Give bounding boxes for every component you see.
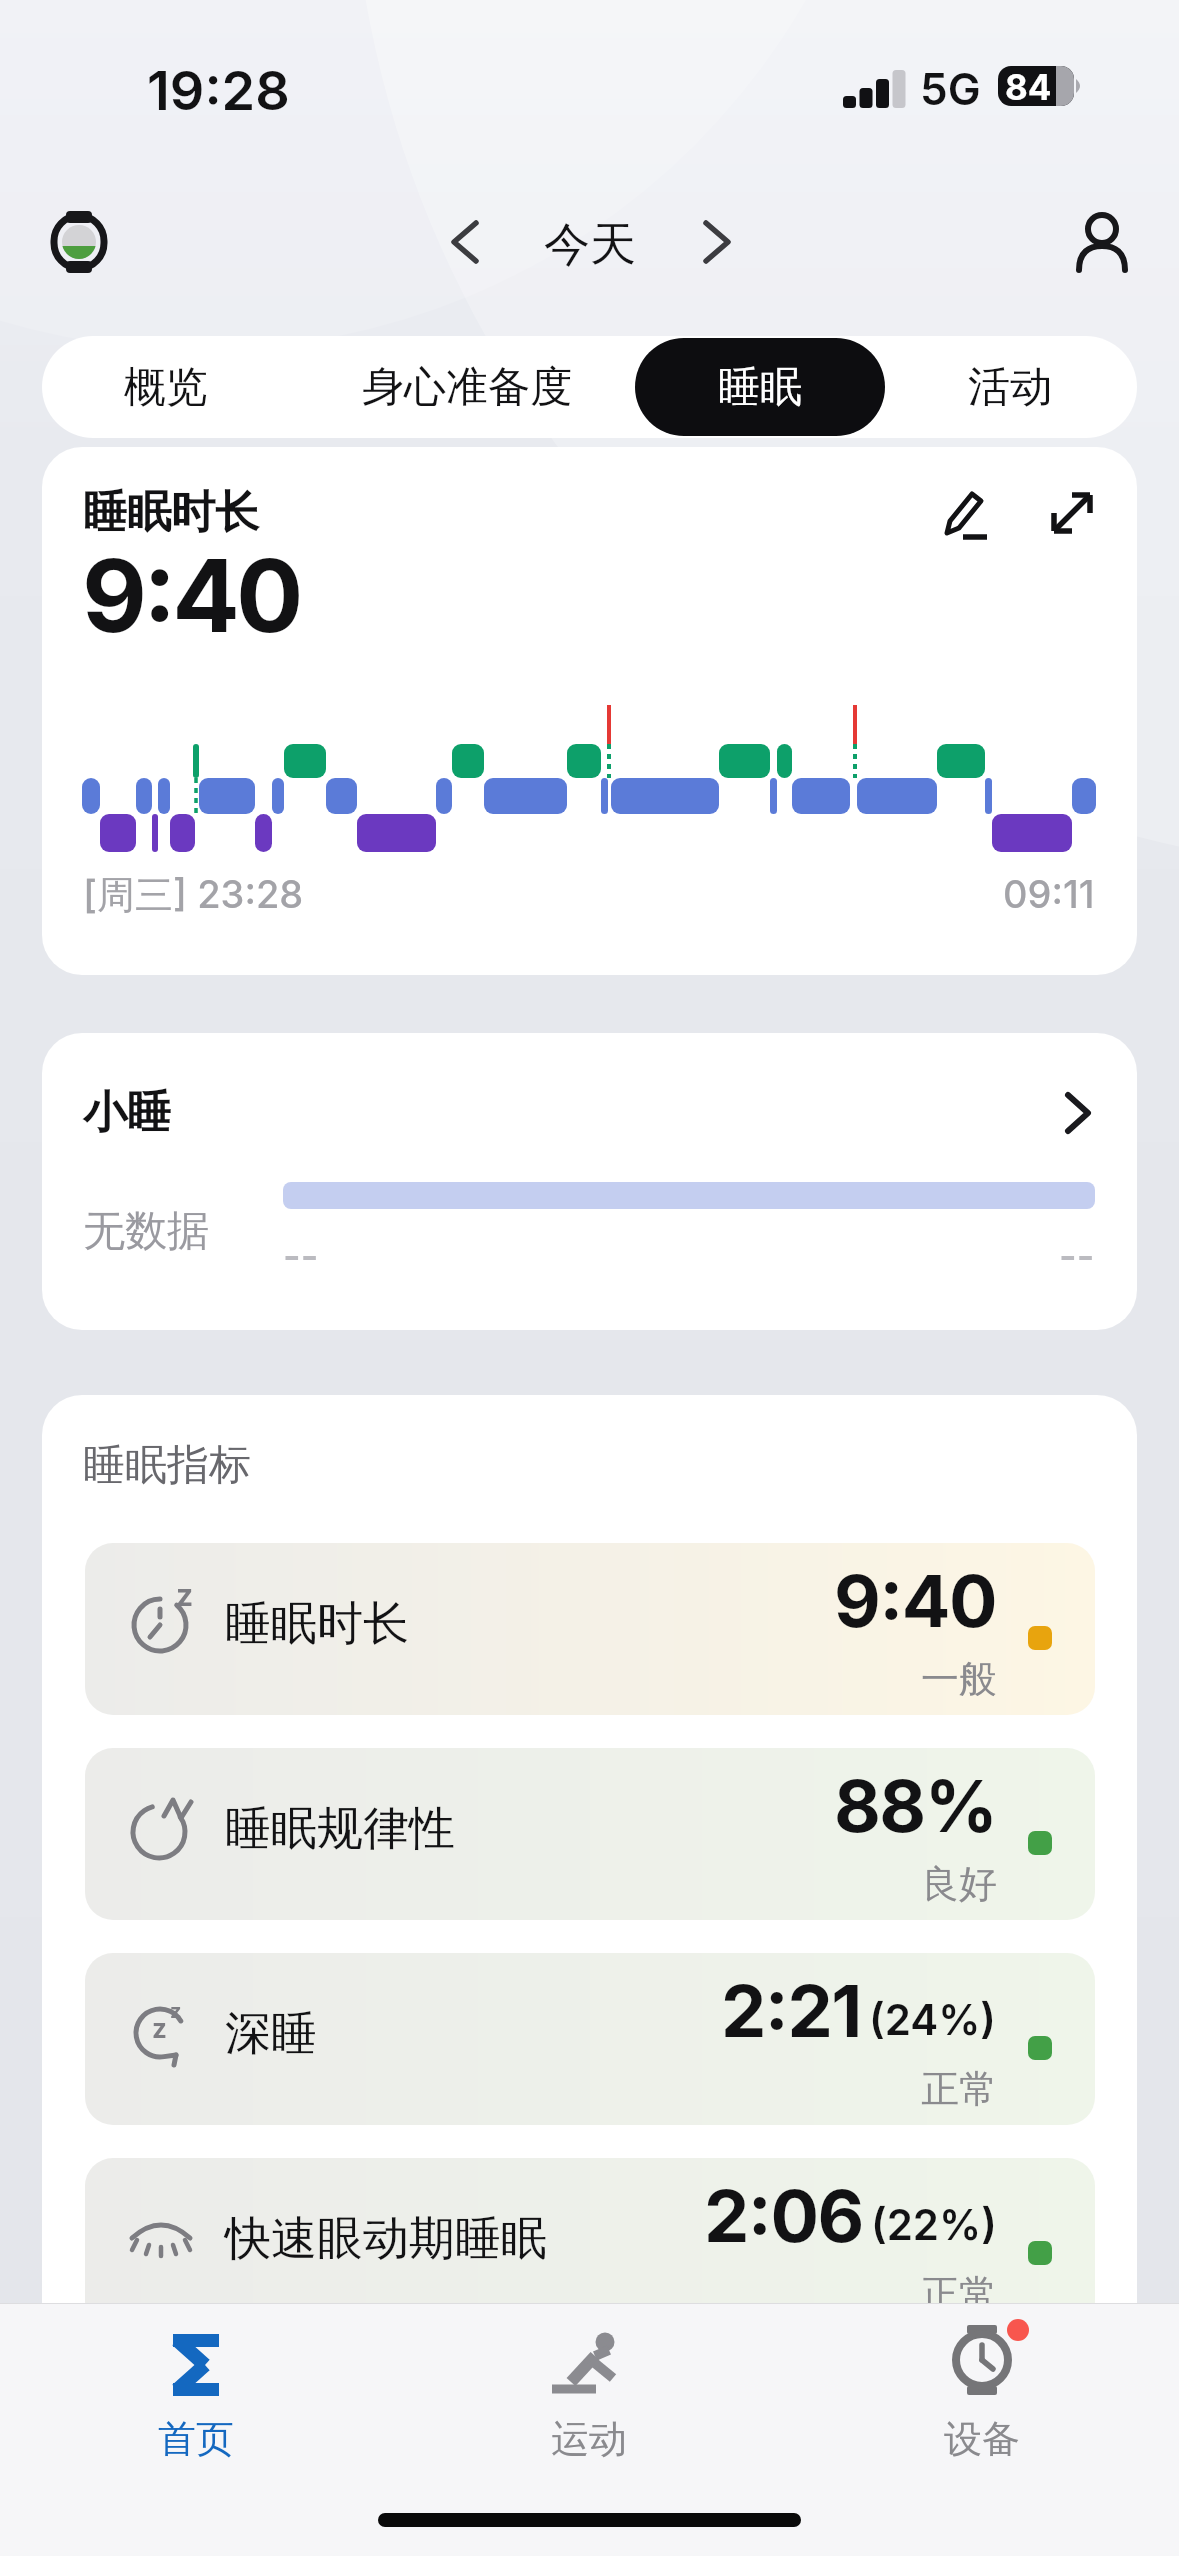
staticText: z [152, 2013, 167, 2044]
staticText: 睡眠 [718, 361, 802, 414]
button[interactable] [48, 205, 112, 279]
staticText: 睡眠时长 [83, 485, 259, 540]
button[interactable]: 睡眠规律性 [85, 1748, 1095, 1920]
staticText: -- [283, 1233, 319, 1279]
button[interactable] [702, 221, 734, 263]
button[interactable] [938, 489, 988, 539]
staticText: 正常 [921, 2065, 997, 2113]
staticText: 运动 [551, 2415, 627, 2463]
staticText: 无数据 [83, 1205, 209, 1258]
button[interactable]: 身心准备度 [332, 336, 602, 438]
staticText: 快速眼动期睡眠 [225, 2210, 547, 2268]
staticText: 9:40 [834, 1557, 997, 1644]
button[interactable]: 设备 [892, 2313, 1072, 2473]
staticText: 设备 [944, 2415, 1020, 2463]
button[interactable]: z [85, 1543, 1095, 1715]
staticText: 88% [834, 1762, 997, 1849]
staticText: (24%) [869, 1994, 997, 2045]
button[interactable] [1072, 208, 1132, 274]
button[interactable] [448, 221, 480, 263]
staticText: 睡眠时长 [225, 1595, 409, 1653]
staticText: 5G [920, 62, 981, 115]
button[interactable]: 活动 [910, 336, 1110, 438]
button[interactable]: 首页 [106, 2313, 286, 2473]
staticText: 首页 [158, 2415, 234, 2463]
staticText: 睡眠规律性 [225, 1800, 455, 1858]
button[interactable]: 睡眠 [635, 338, 885, 436]
staticText: 一般 [921, 1655, 997, 1703]
staticText: 良好 [921, 1860, 997, 1908]
staticText: 19:28 [147, 58, 290, 123]
button[interactable]: 运动 [499, 2313, 679, 2473]
button[interactable]: 快速眼动期睡眠 [85, 2158, 1095, 2330]
staticText: z [170, 1999, 182, 2023]
staticText: (22%) [871, 2199, 997, 2250]
staticText: 身心准备度 [362, 361, 572, 414]
staticText: 84 [1005, 66, 1052, 106]
staticText: 今天 [544, 216, 636, 274]
button[interactable]: z [85, 1953, 1095, 2125]
staticText: [周三] 23:28 [83, 871, 304, 919]
button[interactable]: 小睡 [42, 1033, 1137, 1330]
button[interactable]: 概览 [42, 336, 290, 438]
staticText: 小睡 [83, 1085, 171, 1140]
button[interactable]: 睡眠时长 [42, 447, 1137, 975]
staticText: 09:11 [1003, 871, 1095, 917]
staticText: 2:21 [721, 1967, 861, 2054]
staticText: -- [1059, 1233, 1095, 1279]
staticText: 2:06 [704, 2172, 863, 2259]
staticText: 睡眠指标 [83, 1439, 251, 1492]
staticText: 正常 [921, 2270, 997, 2318]
staticText: 9:40 [82, 535, 300, 656]
button[interactable] [1048, 489, 1096, 537]
staticText: 深睡 [225, 2005, 317, 2063]
staticText: 概览 [124, 361, 208, 414]
staticText: z [176, 1577, 194, 1613]
staticText: 活动 [968, 361, 1052, 414]
